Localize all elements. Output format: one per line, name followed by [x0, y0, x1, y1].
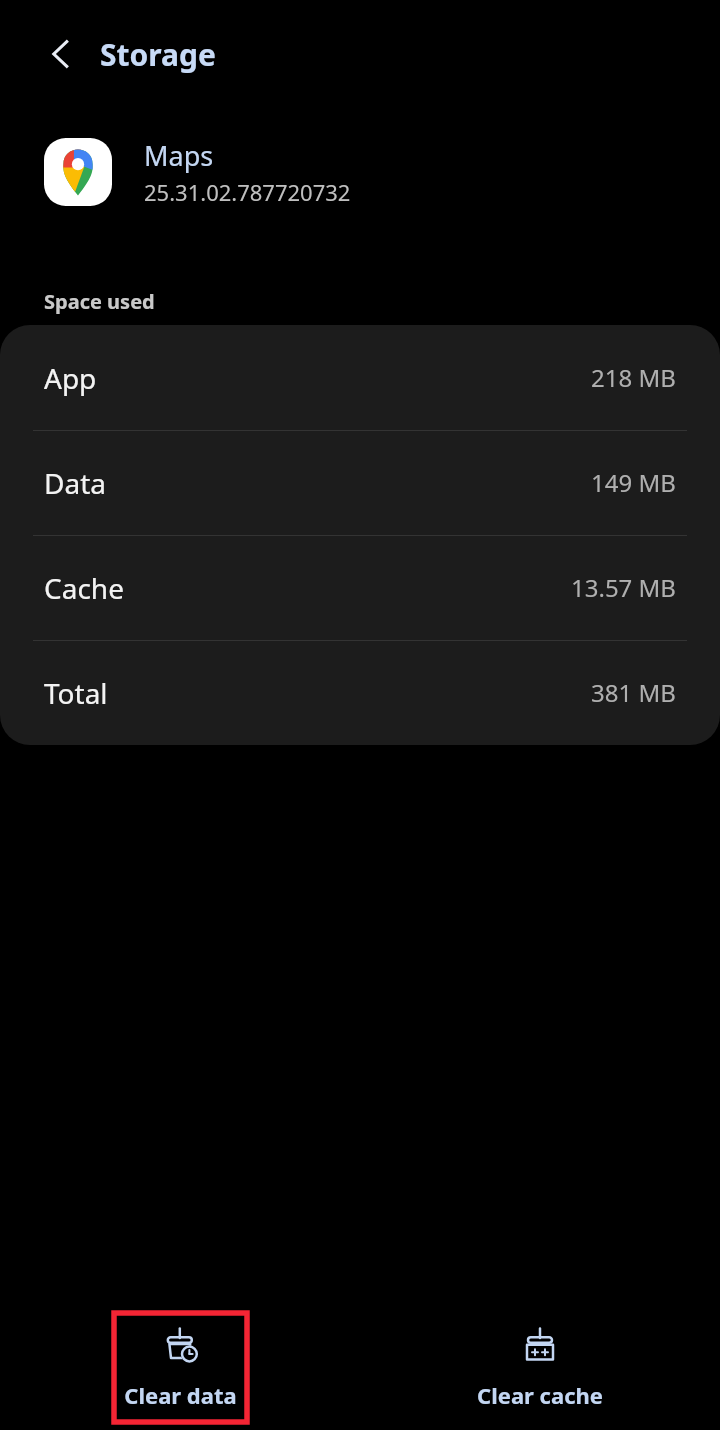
staticText: 218 MB	[591, 361, 676, 394]
button[interactable]: Data	[0, 430, 720, 535]
other: Clear cache	[520, 1326, 560, 1366]
staticText: Storage	[100, 34, 216, 75]
staticText: Clear data	[124, 1380, 237, 1410]
staticText: Cache	[44, 569, 124, 607]
button[interactable]: Clear cache	[450, 1313, 630, 1422]
staticText: Maps	[144, 137, 214, 174]
other: Clear data	[161, 1326, 201, 1366]
staticText: Clear cache	[477, 1380, 603, 1410]
staticText: 149 MB	[591, 466, 676, 499]
staticText: 25.31.02.787720732	[144, 177, 351, 207]
button[interactable]: Total	[0, 640, 720, 745]
button[interactable]: App	[0, 325, 720, 430]
button[interactable]: Clear data	[114, 1313, 247, 1422]
staticText: 381 MB	[591, 676, 676, 709]
button[interactable]: Maps	[0, 128, 720, 216]
button[interactable]: Cache	[0, 535, 720, 640]
staticText: Data	[44, 464, 106, 502]
staticText: Space used	[44, 288, 155, 315]
button[interactable]: Back	[30, 23, 92, 85]
staticText: App	[44, 359, 97, 397]
staticText: 13.57 MB	[571, 571, 676, 604]
staticText: Total	[44, 674, 108, 712]
